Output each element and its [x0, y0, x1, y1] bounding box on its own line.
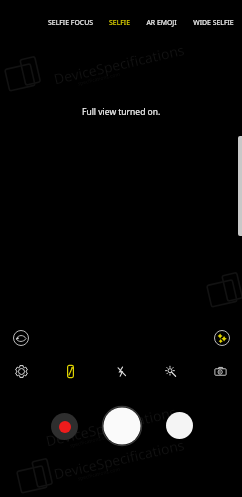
button[interactable]: Gallery: [166, 412, 193, 439]
staticText: WIDE SELFIE: [193, 18, 234, 27]
staticText: DeviceSpecifications: [52, 435, 187, 484]
staticText: DeviceSpecifications: [44, 402, 179, 451]
button[interactable]: AR EMOJI: [140, 14, 183, 31]
staticText: specifications.com: [77, 466, 121, 482]
button[interactable]: Take photo: [102, 406, 142, 446]
button[interactable]: SELFIE FOCUS: [42, 14, 99, 31]
staticText: Full view turned on.: [82, 106, 161, 118]
button[interactable]: Beauty filter: [214, 330, 230, 346]
button[interactable]: Record video: [51, 413, 78, 440]
button[interactable]: Motion photo: [212, 363, 229, 380]
staticText: SELFIE FOCUS: [48, 18, 93, 27]
staticText: specifications.com: [77, 71, 121, 87]
staticText: specifications.com: [69, 433, 113, 449]
button[interactable]: Flash off: [113, 363, 130, 380]
button[interactable]: SELFIE: [103, 14, 136, 31]
staticText: SELFIE: [109, 18, 130, 27]
button[interactable]: Aspect ratio: [62, 363, 79, 380]
staticText: AR EMOJI: [146, 18, 177, 27]
button[interactable]: Face detection: [13, 330, 29, 346]
button[interactable]: Screen light: [162, 363, 179, 380]
button[interactable]: Settings: [13, 363, 30, 380]
button[interactable]: WIDE SELFIE: [187, 14, 240, 31]
